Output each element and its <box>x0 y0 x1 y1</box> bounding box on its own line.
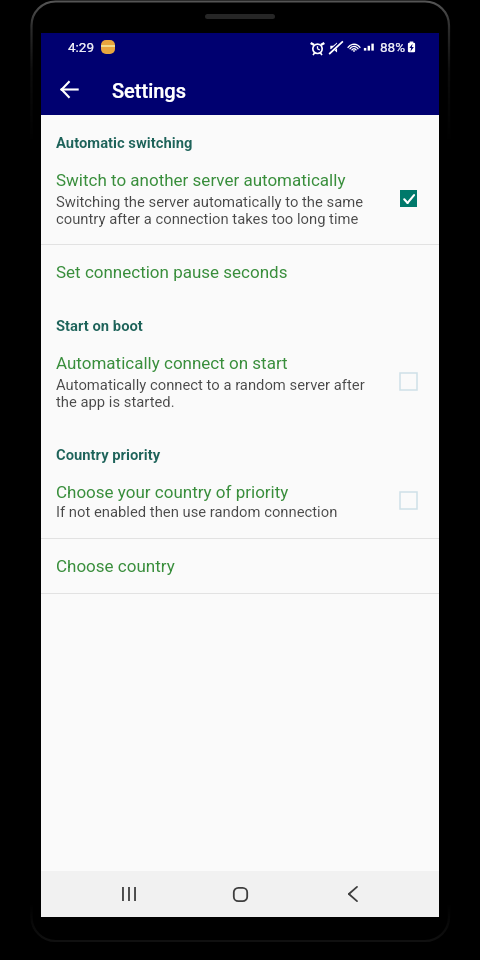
staticText: If not enabled then use random connectio… <box>56 503 338 520</box>
button[interactable]: Home <box>218 872 262 916</box>
staticText: Automatically connect to a random server… <box>56 376 365 411</box>
staticText: Switch to another server automatically <box>56 170 346 190</box>
button[interactable]: Back <box>50 70 88 108</box>
staticText: Country priority <box>56 446 161 463</box>
staticText: Choose your country of priority <box>56 482 289 502</box>
staticText: Start on boot <box>56 317 143 334</box>
button[interactable]: Toggle <box>388 361 428 401</box>
button[interactable]: Toggle <box>388 178 428 218</box>
staticText: Switching the server automatically to th… <box>56 193 364 228</box>
button[interactable]: Back <box>330 872 374 916</box>
button[interactable]: Recent apps <box>107 872 151 916</box>
button[interactable]: Toggle <box>388 480 428 520</box>
staticText: 4:29 <box>68 39 95 55</box>
staticText: Set connection pause seconds <box>56 262 288 282</box>
staticText: Automatically connect on start <box>56 353 288 373</box>
staticText: Automatic switching <box>56 134 193 151</box>
staticText: Choose country <box>56 556 175 576</box>
staticText: Settings <box>112 79 187 102</box>
staticText: 88% <box>380 39 406 55</box>
